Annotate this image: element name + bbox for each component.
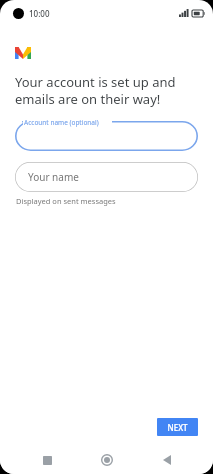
button[interactable]: Home (93, 446, 121, 474)
button[interactable]: Account name (optional) (15, 121, 198, 151)
staticText: NEXT (167, 422, 188, 433)
button[interactable]: NEXT (157, 418, 198, 436)
staticText: 10:00 (29, 8, 50, 19)
staticText: Account name (optional) (24, 118, 99, 127)
staticText: Your account is set up and emails are on… (15, 73, 198, 108)
button[interactable]: Back (153, 446, 181, 474)
staticText: Displayed on sent messages (16, 196, 116, 206)
button[interactable]: Your name (15, 162, 198, 192)
button[interactable]: Recent apps (33, 446, 61, 474)
staticText: Your name (28, 170, 79, 184)
